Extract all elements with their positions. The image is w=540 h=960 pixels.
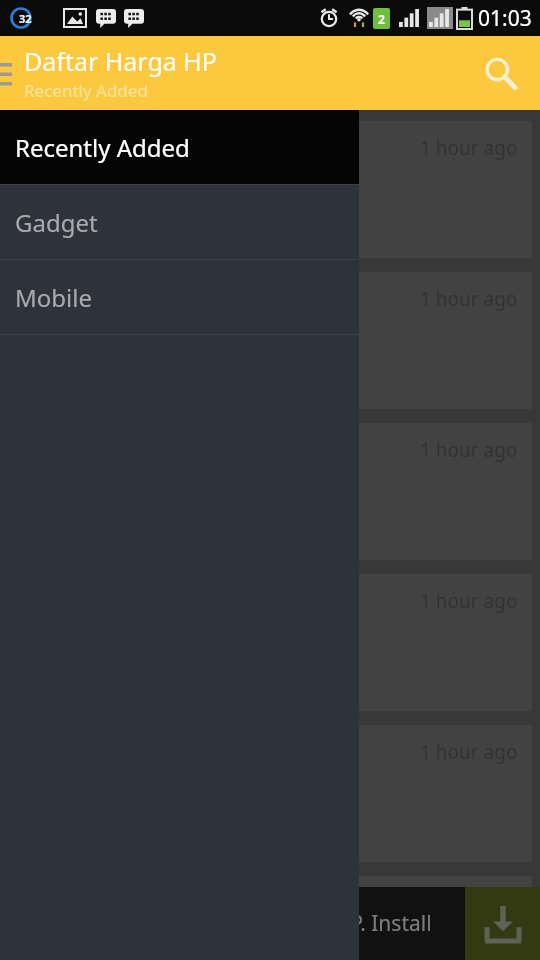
button[interactable]: 1 hour ago: [8, 121, 532, 258]
button[interactable]: 1 hour ago: [8, 272, 532, 409]
button[interactable]: 1 hour ago: [8, 423, 532, 560]
staticText: Daftar Harga HP: [24, 44, 217, 78]
staticText: Mobile: [15, 281, 92, 314]
button[interactable]: Gadget: [0, 185, 359, 259]
button[interactable]: Mobile: [0, 260, 359, 334]
button[interactable]: Search: [472, 45, 528, 101]
staticText: Recently Added: [15, 131, 190, 164]
staticText: 1 hour ago: [420, 437, 518, 463]
staticText: 01:03: [478, 4, 532, 33]
button[interactable]: Download: [465, 887, 540, 960]
staticText: Download aplikasi Daftar Harga HP. Insta…: [16, 909, 432, 938]
button[interactable]: Download aplikasi Daftar Harga HP. Insta…: [0, 887, 465, 960]
staticText: 1 hour ago: [420, 286, 518, 312]
staticText: 1 hour ago: [420, 588, 518, 614]
staticText: Daftar Harga HP Nokia: [22, 173, 261, 202]
button[interactable]: 1 hour ago: [8, 876, 532, 960]
staticText: Gadget: [15, 206, 98, 239]
button[interactable]: Recently Added: [0, 110, 359, 184]
button[interactable]: 1 hour ago: [8, 574, 532, 711]
staticText: 2: [378, 11, 385, 27]
staticText: 32: [19, 11, 32, 26]
staticText: Recently Added: [24, 79, 148, 102]
button[interactable]: Open navigation drawer: [0, 36, 30, 110]
staticText: 1 hour ago: [420, 890, 518, 916]
button[interactable]: 1 hour ago: [8, 725, 532, 862]
staticText: 1 hour ago: [420, 135, 518, 161]
staticText: 1 hour ago: [420, 739, 518, 765]
